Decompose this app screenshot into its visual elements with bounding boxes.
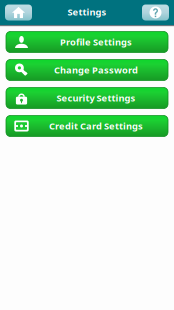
- button[interactable]: Security Settings: [6, 87, 168, 108]
- button[interactable]: Credit Card Settings: [6, 115, 168, 136]
- staticText: Settings: [67, 6, 106, 18]
- button[interactable]: Profile Settings: [6, 31, 168, 52]
- button[interactable]: Home: [5, 4, 32, 20]
- staticText: Profile Settings: [60, 36, 132, 48]
- button[interactable]: Change Password: [6, 59, 168, 80]
- staticText: Security Settings: [56, 92, 135, 104]
- button[interactable]: Help: [142, 4, 169, 20]
- staticText: Change Password: [54, 64, 138, 76]
- staticText: Credit Card Settings: [49, 120, 143, 132]
